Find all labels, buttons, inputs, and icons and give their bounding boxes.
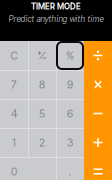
button[interactable]: 8 [28,70,56,99]
button[interactable]: Minus [84,99,112,128]
button[interactable]: 2 [28,128,56,157]
button[interactable]: 4 [0,99,28,128]
staticText: Predict anything with time [8,14,103,24]
staticText: 2 [39,136,45,149]
staticText: 6 [67,107,73,120]
staticText: 3 [67,136,73,149]
button[interactable]: 5 [28,99,56,128]
staticText: C [10,49,17,62]
button[interactable]: Multiply [84,70,112,99]
button[interactable]: C [0,41,28,70]
staticText: 1 [12,136,16,149]
button[interactable]: % [56,41,84,70]
button[interactable]: 6 [56,99,84,128]
button[interactable]: 9 [56,70,84,99]
staticText: TIMER MODE [31,2,81,11]
staticText: 9 [67,78,73,91]
staticText: 5 [39,107,45,120]
button[interactable]: 0 [0,157,56,180]
button[interactable]: 1 [0,128,28,157]
button[interactable]: Plus [84,128,112,157]
staticText: . [68,165,71,178]
staticText: 7 [11,78,17,91]
button[interactable]: 3 [56,128,84,157]
button[interactable]: 7 [0,70,28,99]
staticText: 8 [39,78,45,91]
staticText: 4 [11,107,17,120]
staticText: 0 [11,165,17,178]
button[interactable]: Divide [84,41,112,70]
button[interactable]: Equals [84,157,112,180]
staticText: % [66,49,74,62]
button[interactable] [28,41,56,70]
button[interactable]: . [56,157,84,180]
